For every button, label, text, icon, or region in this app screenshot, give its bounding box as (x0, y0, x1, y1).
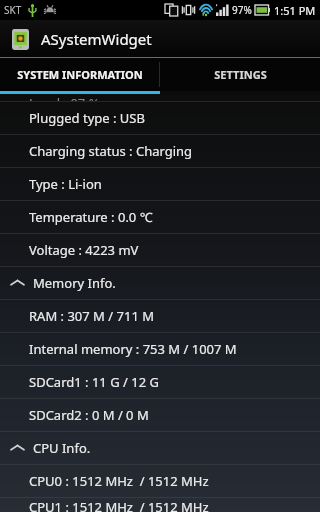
button[interactable]: Level : 97 % (0, 94, 320, 101)
staticText: SDCard1 : 11 G / 12 G (29, 373, 159, 391)
staticText: Charging status : Charging (29, 142, 193, 160)
button[interactable]: RAM : 307 M / 711 M (0, 300, 320, 332)
staticText: SDCard2 : 0 M / 0 M (29, 406, 149, 424)
staticText: 1:51 PM (274, 3, 316, 18)
staticText: 97% (232, 3, 252, 17)
staticText: Level : 97 % (29, 94, 100, 101)
other: Collapse section (8, 439, 26, 457)
button[interactable]: Charging status : Charging (0, 135, 320, 167)
button[interactable]: SDCard1 : 11 G / 12 G (0, 366, 320, 398)
staticText: Memory Info. (33, 274, 116, 292)
staticText: SYSTEM INFORMATION (17, 67, 143, 82)
staticText: CPU Info. (33, 439, 91, 457)
staticText: Voltage : 4223 mV (29, 241, 139, 259)
button[interactable]: CPU1 : 1512 MHz / 1512 MHz (0, 498, 320, 512)
staticText: RAM : 307 M / 711 M (29, 307, 154, 325)
button[interactable]: SETTINGS (160, 58, 320, 91)
other: Collapse section (8, 274, 26, 292)
staticText: ASystemWidget (41, 29, 152, 49)
staticText: Temperature : 0.0 ℃ (29, 208, 153, 226)
button[interactable]: Voltage : 4223 mV (0, 234, 320, 266)
button[interactable]: Plugged type : USB (0, 102, 320, 134)
staticText: SETTINGS (214, 67, 267, 82)
button[interactable]: Type : Li-ion (0, 168, 320, 200)
staticText: CPU0 : 1512 MHz / 1512 MHz (29, 472, 209, 490)
button[interactable]: SYSTEM INFORMATION (0, 58, 159, 91)
button[interactable]: SDCard2 : 0 M / 0 M (0, 399, 320, 431)
button[interactable]: Internal memory : 753 M / 1007 M (0, 333, 320, 365)
button[interactable]: Collapse section (0, 432, 320, 464)
staticText: SKT (4, 3, 22, 17)
staticText: Internal memory : 753 M / 1007 M (29, 340, 237, 358)
staticText: Type : Li-ion (29, 175, 102, 193)
button[interactable]: CPU0 : 1512 MHz / 1512 MHz (0, 465, 320, 497)
button[interactable]: Collapse section (0, 267, 320, 299)
staticText: Plugged type : USB (29, 109, 145, 127)
button[interactable]: Temperature : 0.0 ℃ (0, 201, 320, 233)
staticText: CPU1 : 1512 MHz / 1512 MHz (29, 498, 209, 512)
